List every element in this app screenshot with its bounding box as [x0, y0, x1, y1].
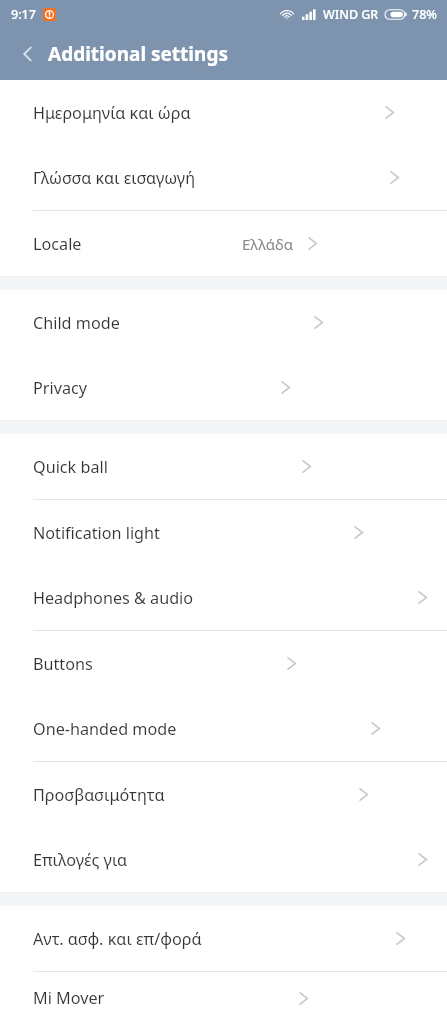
button[interactable]: Back: [6, 32, 50, 76]
staticText: 9:17: [11, 6, 36, 23]
button[interactable]: Προσβασιμότητα: [0, 762, 447, 827]
staticText: Ελλάδα: [242, 234, 294, 254]
staticText: Γλώσσα και εισαγωγή: [33, 167, 196, 189]
button[interactable]: Γλώσσα και εισαγωγή: [0, 145, 447, 210]
button[interactable]: Buttons: [0, 631, 447, 696]
button[interactable]: Child mode: [0, 290, 447, 355]
staticText: One-handed mode: [33, 718, 177, 740]
button[interactable]: Επιλογές για προγραμματιστές: [0, 827, 447, 892]
button[interactable]: Locale: [0, 211, 447, 276]
button[interactable]: Mi Mover: [0, 972, 447, 1024]
staticText: Buttons: [33, 653, 93, 675]
button[interactable]: One-handed mode: [0, 696, 447, 761]
staticText: 78%: [412, 6, 437, 23]
button[interactable]: Headphones & audio effects: [0, 565, 447, 630]
button[interactable]: Quick ball: [0, 434, 447, 499]
staticText: Mi Mover: [33, 987, 105, 1009]
staticText: Locale: [33, 233, 82, 255]
button[interactable]: Privacy: [0, 355, 447, 420]
staticText: WIND GR: [323, 6, 379, 23]
staticText: Headphones & audio effects: [33, 587, 224, 609]
staticText: Notification light: [33, 522, 160, 544]
staticText: Additional settings: [48, 41, 228, 67]
staticText: Privacy: [33, 377, 87, 399]
staticText: Επιλογές για προγραμματιστές: [33, 849, 224, 871]
staticText: Ημερομηνία και ώρα: [33, 102, 191, 124]
button[interactable]: Notification light: [0, 500, 447, 565]
staticText: Quick ball: [33, 456, 108, 478]
staticText: Αντ. ασφ. και επ/φορά: [33, 928, 202, 950]
button[interactable]: Αντ. ασφ. και επ/φορά: [0, 906, 447, 971]
button[interactable]: Ημερομηνία και ώρα: [0, 80, 447, 145]
staticText: Child mode: [33, 312, 120, 334]
staticText: Προσβασιμότητα: [33, 784, 165, 806]
